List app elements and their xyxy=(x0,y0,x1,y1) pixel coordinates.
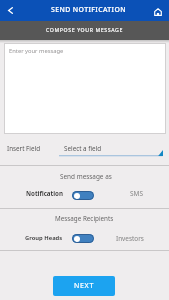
staticText: SMS xyxy=(130,189,144,198)
staticText: SEND NOTIFICATION xyxy=(51,5,127,14)
button[interactable]: NEXT xyxy=(53,276,115,296)
staticText: Message Recipients xyxy=(55,214,114,223)
staticText: Notification xyxy=(26,189,63,197)
staticText: Investors xyxy=(116,234,144,243)
staticText: Enter your message xyxy=(9,47,64,55)
button[interactable]: Back xyxy=(0,0,20,21)
staticText: COMPOSE YOUR MESSAGE xyxy=(46,26,124,33)
button[interactable]: Home xyxy=(148,1,168,22)
button[interactable]: Toggle xyxy=(72,234,94,243)
button[interactable]: Select a field xyxy=(59,141,163,157)
button[interactable]: Toggle xyxy=(72,191,94,200)
staticText: Group Heads xyxy=(25,234,63,242)
staticText: Select a field xyxy=(64,144,102,153)
staticText: Send message as xyxy=(60,172,112,181)
staticText: NEXT xyxy=(74,281,95,291)
staticText: Insert Field xyxy=(7,144,41,153)
